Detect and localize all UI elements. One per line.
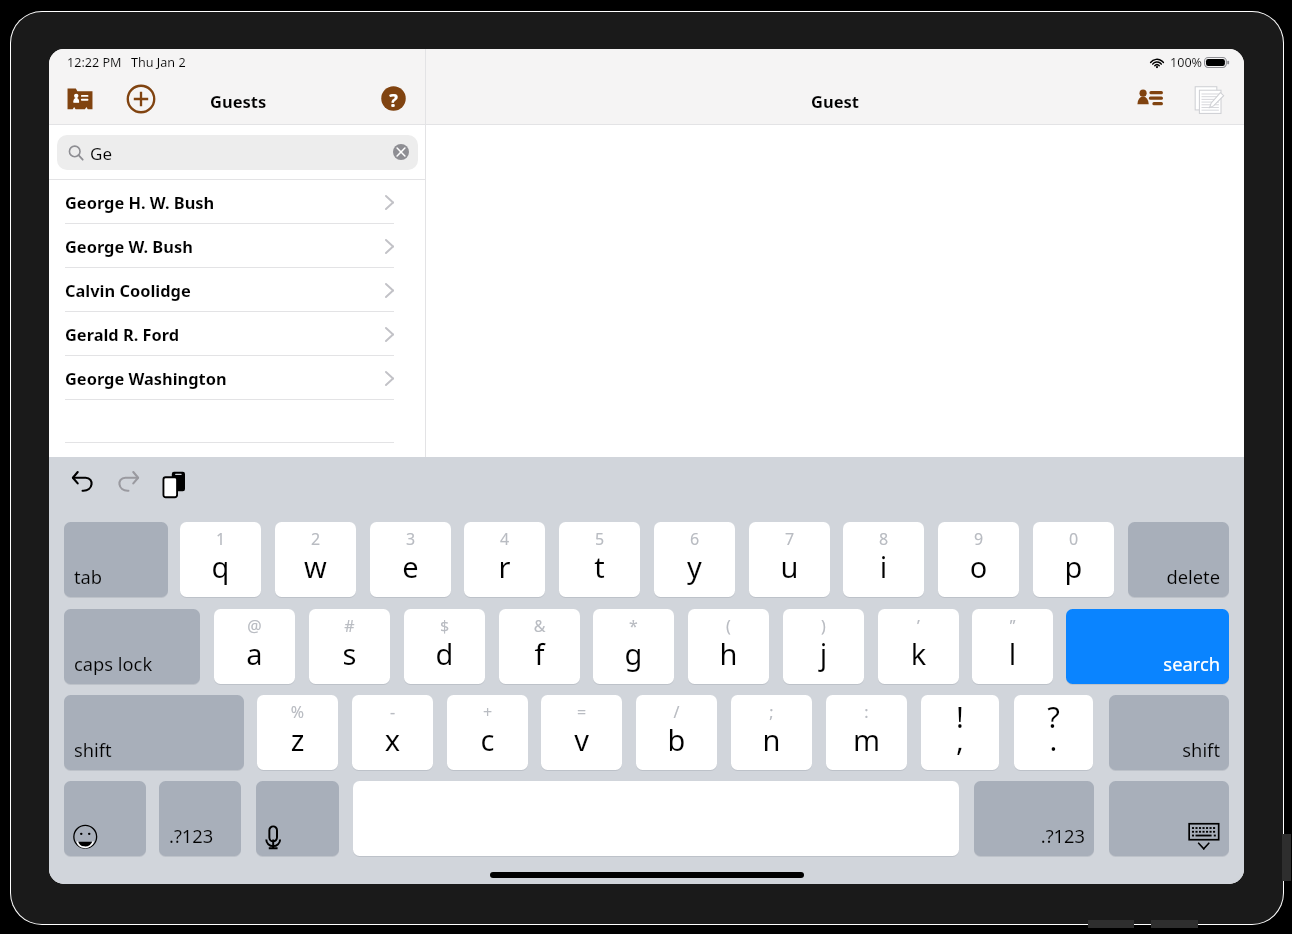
button[interactable]: ) — [783, 609, 864, 684]
button[interactable]: search — [1066, 609, 1229, 684]
button[interactable]: Paste — [163, 471, 185, 498]
staticText: * — [593, 615, 674, 637]
button[interactable]: / — [636, 695, 717, 770]
button[interactable]: & — [499, 609, 580, 684]
button[interactable]: delete — [1128, 522, 1229, 597]
staticText: r — [464, 547, 545, 586]
staticText: Ge — [90, 142, 112, 165]
button[interactable]: 2 — [275, 522, 356, 597]
staticText: George W. Bush — [65, 235, 193, 257]
button[interactable]: George H. W. Bush — [49, 180, 425, 224]
button[interactable]: 6 — [654, 522, 735, 597]
staticText: 3 — [370, 528, 451, 550]
staticText: % — [257, 701, 338, 723]
button[interactable]: $ — [404, 609, 485, 684]
staticText: # — [309, 615, 390, 637]
staticText: j — [783, 634, 864, 673]
staticText: $ — [404, 615, 485, 637]
button[interactable]: ” — [972, 609, 1053, 684]
staticText: 8 — [843, 528, 924, 550]
staticText: ; — [731, 701, 812, 723]
staticText: a — [214, 634, 295, 673]
staticText: w — [275, 547, 356, 586]
staticText: delete — [1128, 564, 1220, 589]
button[interactable]: - — [352, 695, 433, 770]
staticText: George Washington — [65, 367, 227, 389]
button[interactable]: ; — [731, 695, 812, 770]
staticText: m — [826, 720, 907, 759]
staticText: 9 — [938, 528, 1019, 550]
staticText: l — [972, 634, 1053, 673]
button[interactable]: shift — [1109, 695, 1229, 770]
button[interactable]: 3 — [370, 522, 451, 597]
button[interactable]: Undo — [72, 471, 94, 492]
button[interactable]: 9 — [938, 522, 1019, 597]
staticText: tab — [74, 564, 103, 589]
button[interactable]: Clear search — [393, 144, 409, 160]
button[interactable]: Dictation — [256, 781, 339, 856]
button[interactable]: Ge — [57, 135, 418, 170]
button[interactable]: Add guest — [126, 84, 156, 114]
button[interactable]: Calvin Coolidge — [49, 268, 425, 312]
staticText: 12:22 PM — [67, 54, 122, 71]
button[interactable]: 5 — [559, 522, 640, 597]
staticText: caps lock — [74, 651, 153, 676]
staticText: + — [447, 701, 528, 723]
button[interactable]: .?123 — [974, 781, 1094, 856]
button[interactable]: caps lock — [64, 609, 200, 684]
button[interactable]: Notes — [1194, 85, 1224, 114]
button[interactable]: Hide keyboard — [1109, 781, 1229, 856]
staticText: h — [688, 634, 769, 673]
button[interactable]: 7 — [749, 522, 830, 597]
button[interactable]: ! — [921, 695, 999, 770]
button[interactable]: Emoji — [64, 781, 146, 856]
button[interactable]: Help — [381, 86, 406, 111]
staticText: 100% — [1170, 54, 1203, 71]
button[interactable]: # — [309, 609, 390, 684]
button[interactable]: 8 — [843, 522, 924, 597]
button[interactable]: Guest list — [1137, 87, 1164, 109]
button[interactable]: 4 — [464, 522, 545, 597]
button[interactable]: * — [593, 609, 674, 684]
staticText: shift — [1109, 737, 1220, 762]
button[interactable]: shift — [64, 695, 244, 770]
button[interactable]: Gerald R. Ford — [49, 312, 425, 356]
button[interactable]: 1 — [180, 522, 261, 597]
button[interactable]: George Washington — [49, 356, 425, 400]
button[interactable]: 0 — [1033, 522, 1114, 597]
button[interactable]: % — [257, 695, 338, 770]
button[interactable]: ’ — [878, 609, 959, 684]
staticText: g — [593, 634, 674, 673]
staticText: 6 — [654, 528, 735, 550]
staticText: Gerald R. Ford — [65, 323, 180, 345]
staticText: Thu Jan 2 — [131, 54, 186, 71]
staticText: shift — [74, 737, 112, 762]
staticText: .?123 — [974, 823, 1085, 848]
button[interactable]: ( — [688, 609, 769, 684]
button[interactable]: = — [541, 695, 622, 770]
staticText: k — [878, 634, 959, 673]
staticText: ’ — [878, 615, 959, 637]
staticText: q — [180, 547, 261, 586]
button[interactable]: + — [447, 695, 528, 770]
button[interactable]: .?123 — [159, 781, 241, 856]
staticText: 5 — [559, 528, 640, 550]
staticText: i — [843, 547, 924, 586]
button[interactable]: tab — [64, 522, 168, 597]
button[interactable]: @ — [214, 609, 295, 684]
staticText: d — [404, 634, 485, 673]
staticText: . — [1014, 720, 1093, 759]
staticText: v — [541, 720, 622, 759]
staticText: t — [559, 547, 640, 586]
staticText: = — [541, 701, 622, 723]
staticText: ? — [381, 88, 406, 113]
button[interactable]: George W. Bush — [49, 224, 425, 268]
staticText: e — [370, 547, 451, 586]
button[interactable]: : — [826, 695, 907, 770]
button[interactable]: Contacts — [67, 86, 93, 110]
button[interactable]: Redo — [117, 471, 139, 492]
button[interactable]: ? — [1014, 695, 1093, 770]
staticText: ? — [1014, 697, 1093, 736]
staticText: p — [1033, 547, 1114, 586]
